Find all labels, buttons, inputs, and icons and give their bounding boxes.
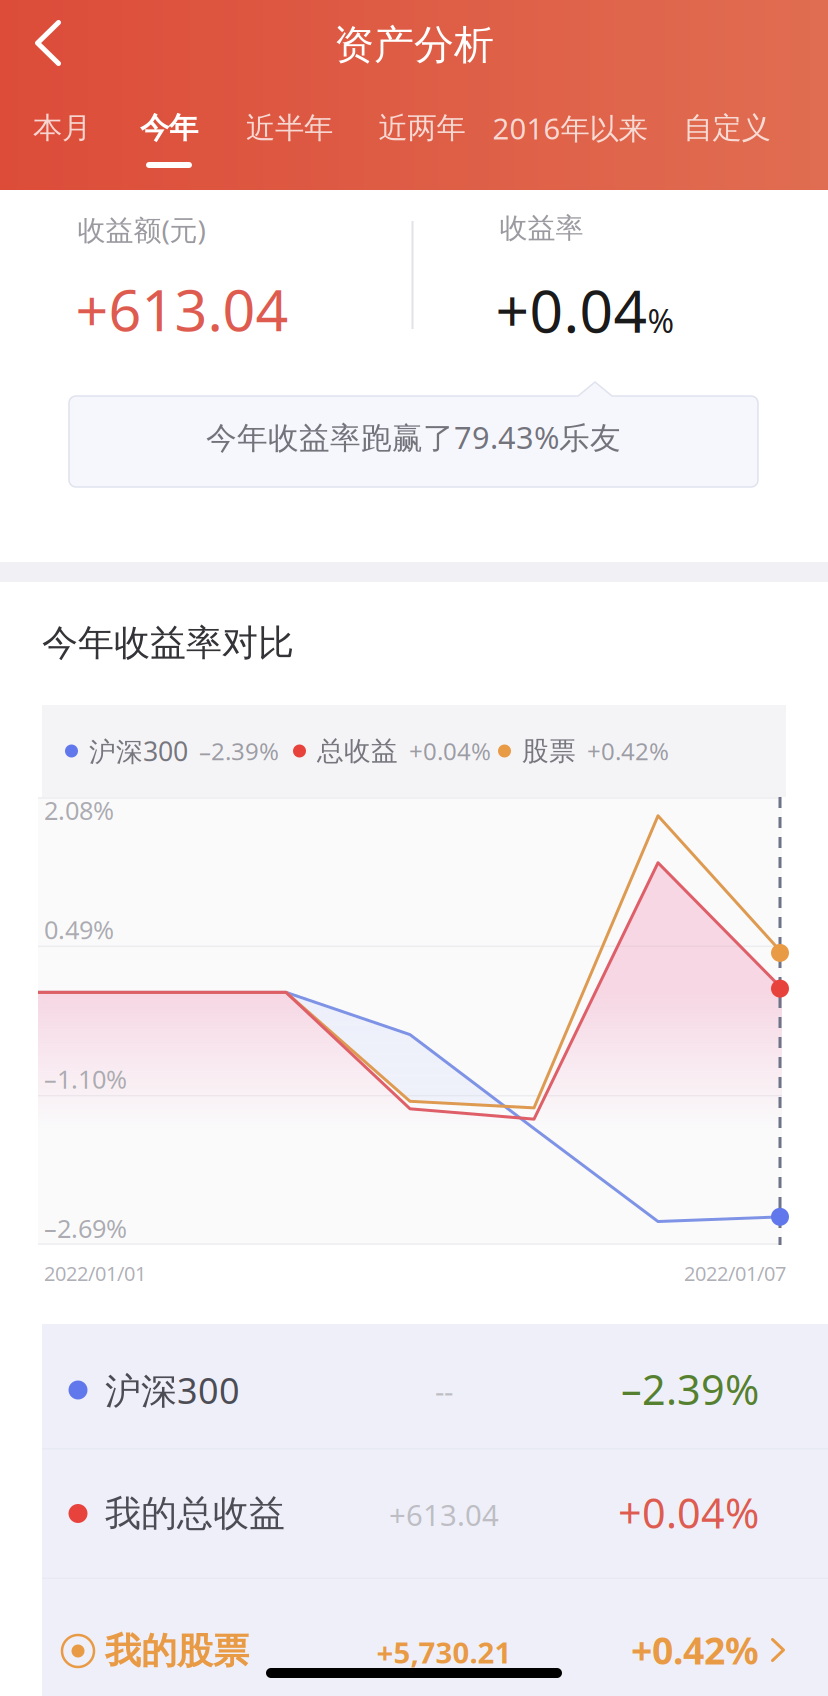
button[interactable]: 近两年	[369, 104, 475, 190]
staticText: --	[435, 1371, 453, 1410]
staticText: +0.04	[495, 271, 647, 349]
staticText: %	[647, 299, 674, 342]
staticText: 股票	[522, 735, 576, 767]
staticText: 我的总收益	[105, 1491, 285, 1536]
staticText: 沪深300	[105, 1366, 240, 1414]
staticText: +0.42%	[631, 1625, 759, 1675]
staticText: 自定义	[683, 110, 770, 146]
staticText: 今年收益率对比	[42, 621, 294, 665]
button[interactable]: 我的股票	[42, 1579, 828, 1696]
staticText: 2016年以来	[492, 108, 647, 147]
button[interactable]: 2016年以来	[481, 104, 659, 190]
staticText: –1.10%	[44, 1062, 127, 1096]
button[interactable]: 近半年	[234, 104, 345, 190]
staticText: +0.04%	[618, 1485, 759, 1540]
staticText: 本月	[33, 110, 91, 146]
button[interactable]: 返回	[6, 0, 86, 86]
staticText: –2.69%	[44, 1211, 127, 1245]
staticText: +613.04	[389, 1495, 499, 1534]
staticText: 收益额(元)	[77, 211, 205, 248]
button[interactable]: 沪深300	[42, 1324, 828, 1448]
staticText: –2.39%	[199, 735, 279, 767]
staticText: +0.04%	[409, 735, 491, 767]
staticText: 近两年	[378, 110, 465, 146]
button[interactable]: 本月	[22, 104, 102, 190]
staticText: 资产分析	[334, 20, 494, 69]
staticText: 近半年	[246, 110, 333, 146]
staticText: –2.39%	[621, 1362, 759, 1416]
staticText: 2022/01/01	[44, 1260, 146, 1287]
staticText: 我的股票	[105, 1629, 249, 1673]
staticText: 0.49%	[44, 913, 114, 946]
button[interactable]: 自定义	[672, 104, 782, 190]
staticText: +613.04	[75, 271, 288, 347]
staticText: 总收益	[317, 735, 398, 767]
staticText: 沪深300	[89, 733, 188, 769]
staticText: 2022/01/07	[684, 1260, 786, 1287]
button[interactable]: 我的总收益	[42, 1449, 828, 1577]
staticText: +0.42%	[587, 735, 669, 767]
staticText: 今年	[140, 110, 198, 146]
staticText: 2.08%	[44, 793, 114, 827]
button[interactable]: 今年	[123, 104, 215, 190]
staticText: +5,730.21	[376, 1632, 511, 1671]
staticText: 今年收益率跑赢了79.43%乐友	[206, 417, 621, 457]
staticText: 收益率	[499, 211, 583, 245]
